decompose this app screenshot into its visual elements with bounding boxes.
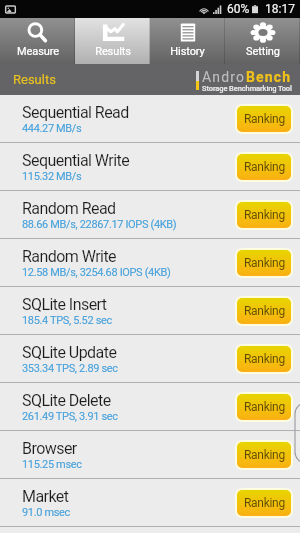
staticText: Bench xyxy=(246,69,292,85)
staticText: Ranking xyxy=(244,112,285,126)
button[interactable]: Sequential Write xyxy=(0,143,300,190)
staticText: Measure xyxy=(17,45,59,58)
staticText: Storage Benchmarking Tool xyxy=(202,84,292,93)
button[interactable]: Ranking xyxy=(235,344,293,374)
button[interactable]: Ranking xyxy=(235,104,293,134)
staticText: 18:17 xyxy=(265,2,295,16)
staticText: 12.58 MB/s, 3254.68 IOPS (4KB) xyxy=(22,266,171,279)
staticText: 353.34 TPS, 2.89 sec xyxy=(22,362,118,375)
other: Gallery notification xyxy=(5,4,16,15)
button[interactable]: Sequential Read xyxy=(0,95,300,142)
staticText: 88.66 MB/s, 22867.17 IOPS (4KB) xyxy=(22,218,177,231)
button[interactable]: SQLite Insert xyxy=(0,287,300,334)
staticText: SQLite Insert xyxy=(22,295,107,314)
staticText: 261.49 TPS, 3.91 sec xyxy=(22,410,118,423)
staticText: Setting xyxy=(246,45,280,58)
staticText: 185.4 TPS, 5.52 sec xyxy=(22,314,112,327)
staticText: SQLite Delete xyxy=(22,391,111,410)
button[interactable]: Ranking xyxy=(235,296,293,326)
button[interactable]: Results xyxy=(75,18,150,64)
button[interactable]: Random Read xyxy=(0,191,300,238)
button[interactable]: Ranking xyxy=(235,440,293,470)
staticText: Results xyxy=(95,45,131,58)
button[interactable]: Browser xyxy=(0,431,300,478)
staticText: Sequential Read xyxy=(22,103,129,122)
staticText: 115.32 MB/s xyxy=(22,170,82,183)
button[interactable]: Ranking xyxy=(235,248,293,278)
staticText: Ranking xyxy=(244,352,285,366)
button[interactable]: Ranking xyxy=(235,152,293,182)
staticText: 91.0 msec xyxy=(22,506,70,519)
staticText: Ranking xyxy=(244,208,285,222)
staticText: 60% xyxy=(227,2,250,16)
staticText: History xyxy=(170,45,205,58)
button[interactable]: Measure xyxy=(0,18,75,64)
staticText: Ranking xyxy=(244,448,285,462)
staticText: Market xyxy=(22,487,69,506)
staticText: Ranking xyxy=(244,256,285,270)
button[interactable]: Ranking xyxy=(235,488,293,518)
staticText: Browser xyxy=(22,439,77,458)
button[interactable]: Ranking xyxy=(235,200,293,230)
button[interactable]: Setting xyxy=(225,18,300,64)
staticText: Ranking xyxy=(244,400,285,414)
staticText: Random Write xyxy=(22,247,117,266)
button[interactable]: SQLite Update xyxy=(0,335,300,382)
staticText: Results xyxy=(13,72,56,87)
staticText: SQLite Update xyxy=(22,343,117,362)
button[interactable]: Random Write xyxy=(0,239,300,286)
staticText: Ranking xyxy=(244,160,285,174)
button[interactable]: SQLite Delete xyxy=(0,383,300,430)
staticText: Random Read xyxy=(22,199,116,218)
staticText: Sequential Write xyxy=(22,151,130,170)
button[interactable]: Market xyxy=(0,479,300,526)
staticText: Andro xyxy=(202,69,246,85)
staticText: 115.25 msec xyxy=(22,458,82,471)
staticText: Ranking xyxy=(244,304,285,318)
button[interactable]: History xyxy=(150,18,225,64)
button[interactable]: Ranking xyxy=(235,392,293,422)
staticText: 444.27 MB/s xyxy=(22,122,82,135)
staticText: Ranking xyxy=(244,496,285,510)
